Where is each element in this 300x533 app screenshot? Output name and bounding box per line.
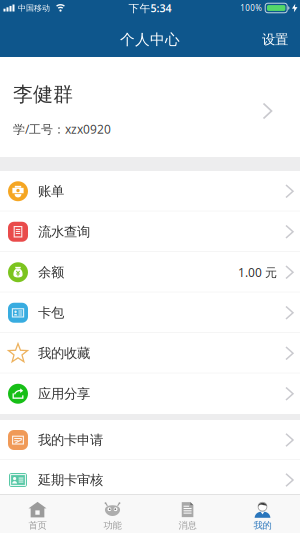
staticText: 中国移动 (18, 3, 50, 13)
staticText: 学/工号：xzx0920 (13, 121, 111, 137)
staticText: 账单 (38, 183, 64, 199)
button[interactable]: 卡包 (0, 292, 300, 333)
staticText: 余额 (38, 264, 64, 280)
staticText: 消息 (178, 520, 196, 531)
button[interactable]: 我的卡申请 (0, 420, 300, 460)
staticText: 我的收藏 (38, 345, 90, 361)
button[interactable]: 消息 (150, 495, 225, 533)
staticText: 卡包 (38, 305, 64, 321)
staticText: 我的卡申请 (38, 432, 103, 448)
staticText: 设置 (262, 31, 288, 48)
staticText: 我的 (253, 520, 271, 531)
staticText: 延期卡审核 (38, 472, 103, 488)
button[interactable]: 设置 (262, 25, 300, 48)
staticText: 1.00 元 (238, 264, 277, 280)
button[interactable]: 流水查询 (0, 211, 300, 252)
button[interactable]: 我的 (225, 495, 300, 533)
button[interactable]: 首页 (0, 495, 75, 533)
staticText: 100% (240, 3, 262, 13)
staticText: 首页 (28, 520, 46, 531)
button[interactable]: 功能 (75, 495, 150, 533)
button[interactable]: 余额 (0, 252, 300, 292)
staticText: 李健群 (13, 82, 73, 107)
staticText: 流水查询 (38, 224, 90, 240)
staticText: 下午5:34 (128, 1, 171, 15)
button[interactable]: 我的收藏 (0, 333, 300, 373)
staticText: 功能 (103, 520, 121, 531)
staticText: 应用分享 (38, 386, 90, 402)
button[interactable]: 李健群 (0, 57, 300, 157)
button[interactable]: 延期卡审核 (0, 460, 300, 500)
button[interactable]: 应用分享 (0, 373, 300, 414)
button[interactable]: 账单 (0, 171, 300, 211)
staticText: 个人中心 (120, 30, 180, 48)
